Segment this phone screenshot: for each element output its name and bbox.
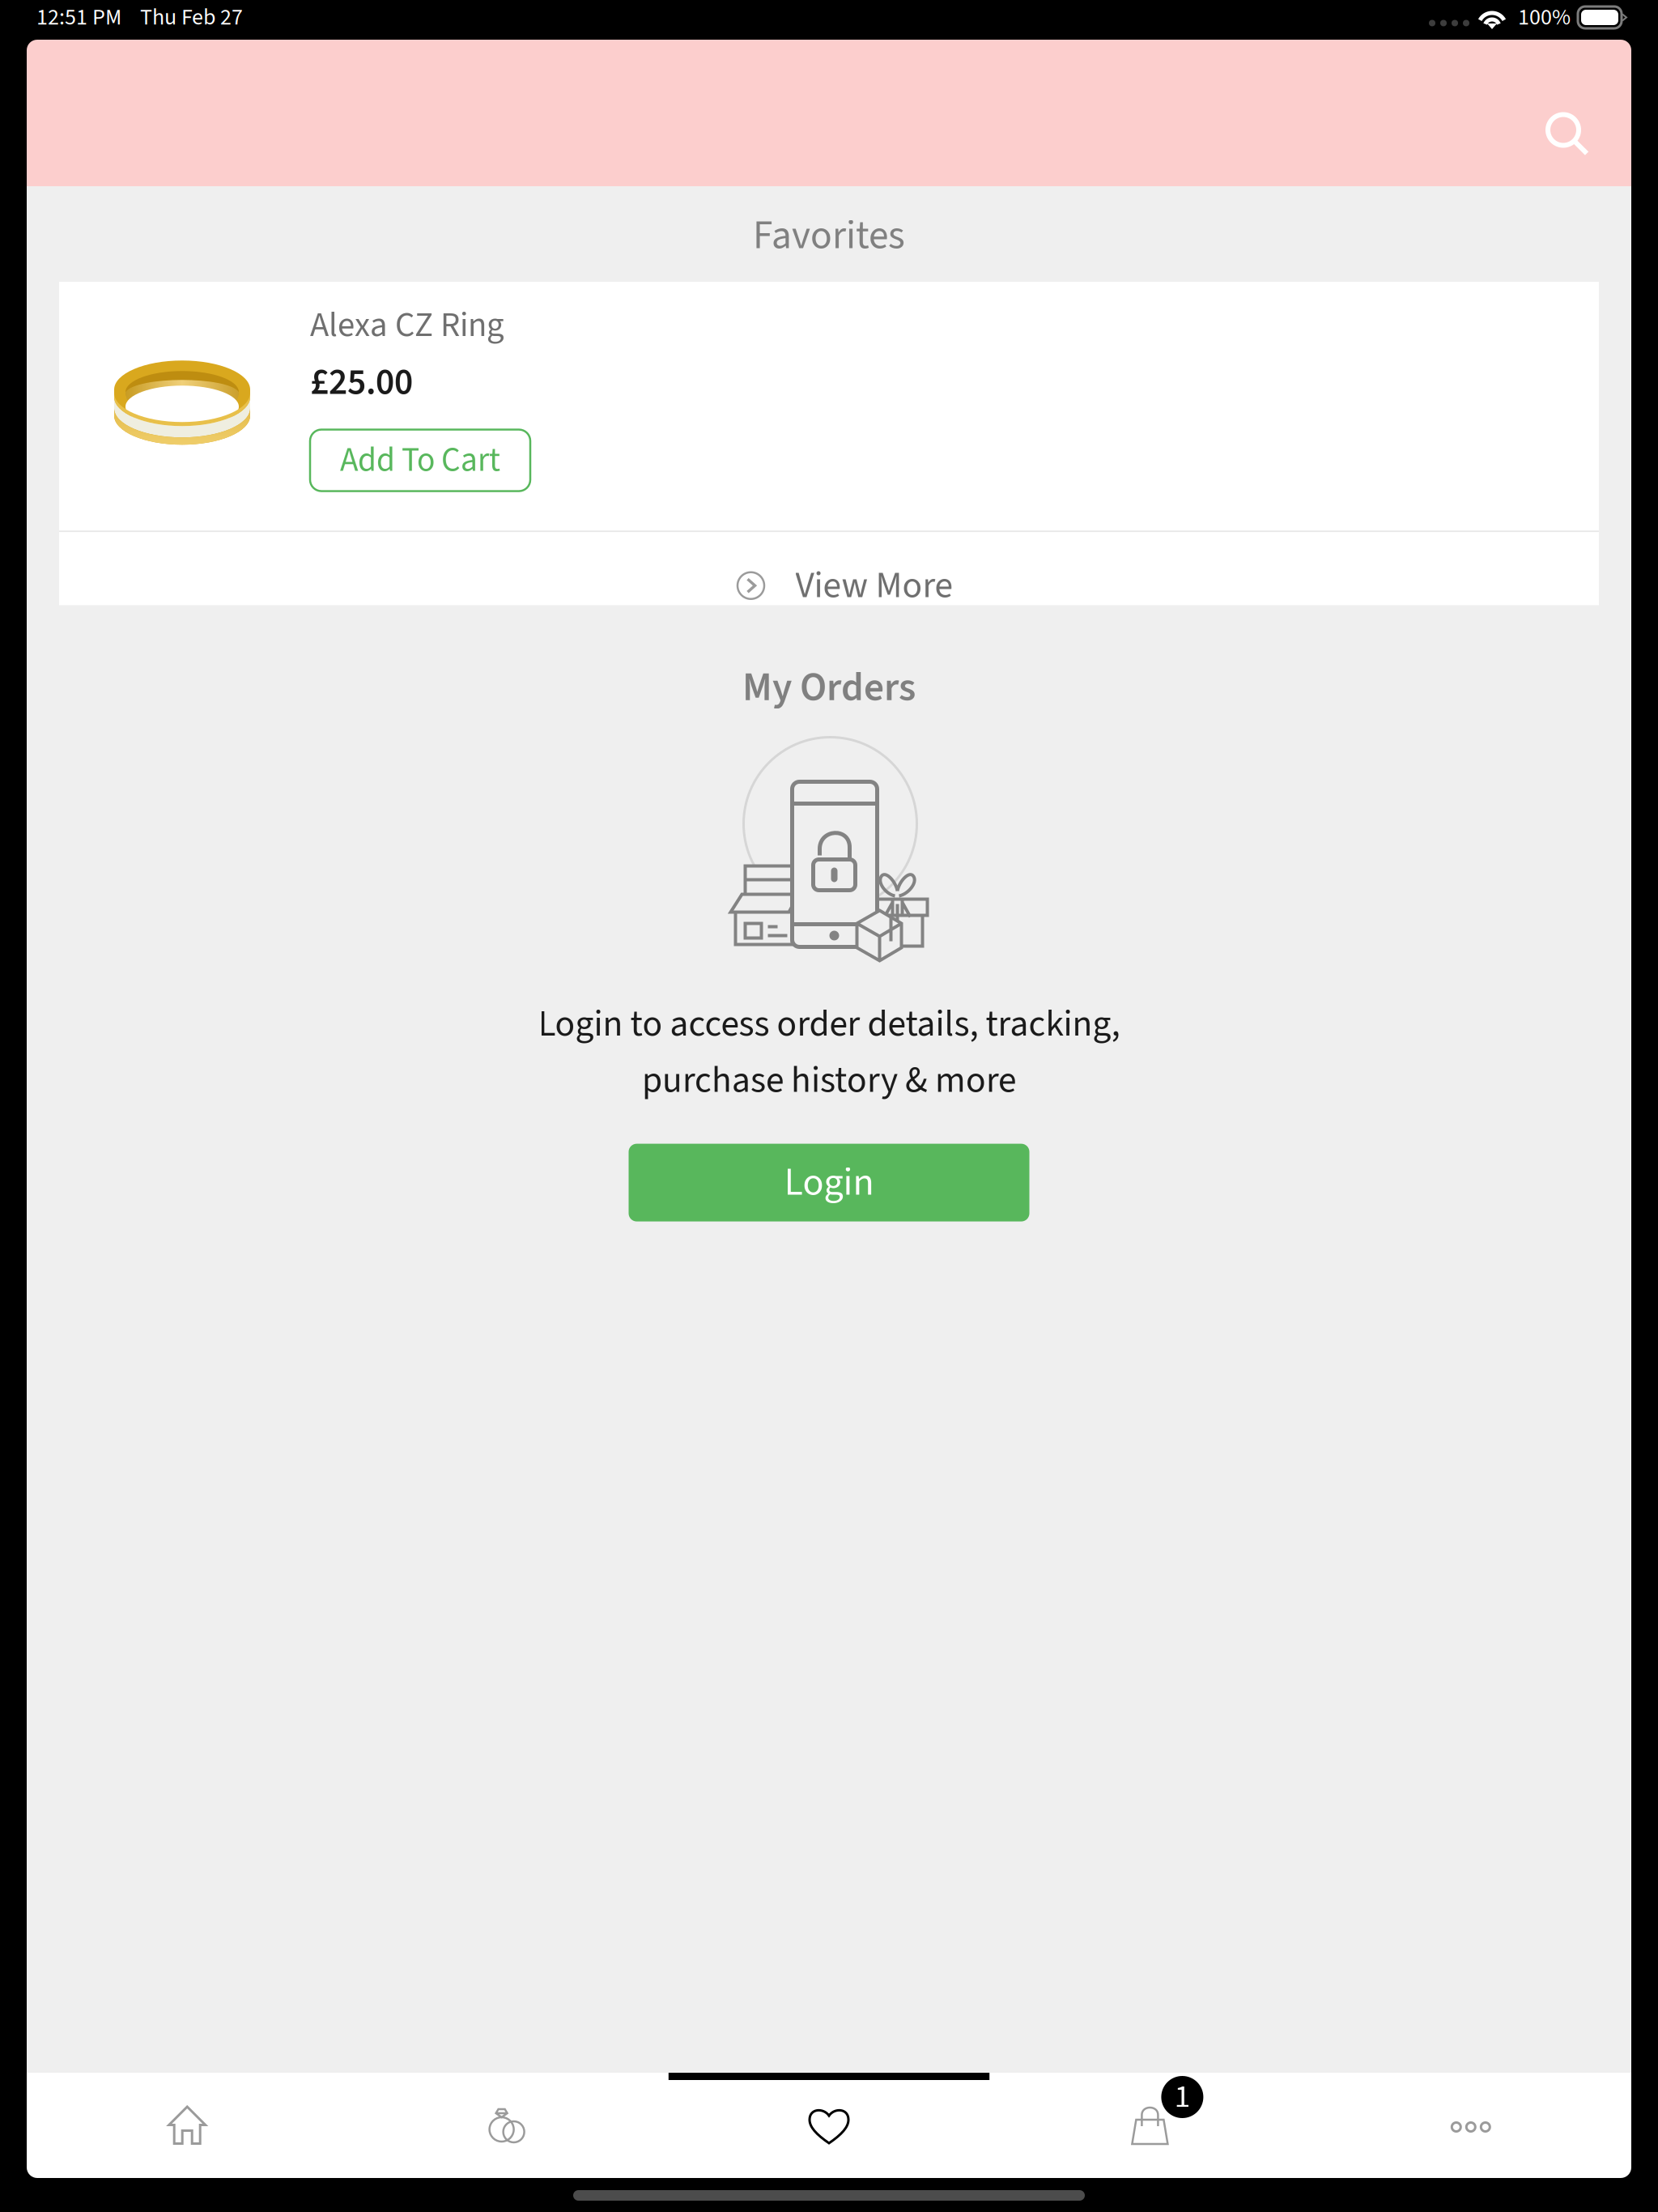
button[interactable]: Favorites (669, 2073, 989, 2178)
button[interactable]: Login (629, 1144, 1029, 1221)
button[interactable]: Search (1519, 85, 1616, 183)
staticText: Thu Feb 27 (140, 1, 243, 34)
button[interactable]: Cart, 1 item (989, 2073, 1310, 2178)
staticText: View More (795, 559, 952, 612)
staticText: 100% (1518, 1, 1571, 34)
staticText: Add To Cart (340, 436, 500, 484)
staticText: Alexa CZ Ring (310, 301, 504, 350)
button[interactable]: Home (27, 2073, 348, 2178)
staticText: purchase history & more (642, 1054, 1016, 1107)
button[interactable]: Add To Cart (310, 430, 530, 491)
staticText: Login to access order details, tracking, (538, 998, 1120, 1050)
staticText: Login (784, 1155, 874, 1210)
button[interactable]: Jewellery (348, 2073, 669, 2178)
button[interactable]: More (1310, 2073, 1631, 2178)
staticText: Favorites (753, 207, 905, 264)
staticText: £25.00 (310, 356, 413, 409)
button[interactable]: View More (59, 532, 1599, 605)
staticText: 1 (1174, 2074, 1190, 2120)
staticText: My Orders (742, 659, 916, 716)
staticText: 12:51 PM (36, 1, 121, 34)
